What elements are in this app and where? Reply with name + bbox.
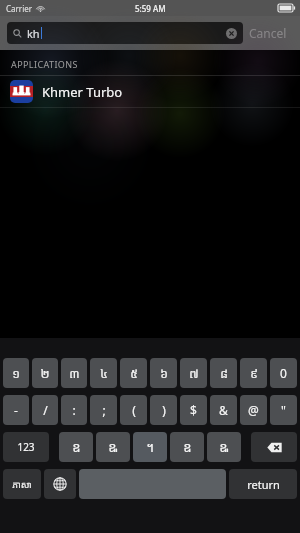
button[interactable]: Cancel	[243, 22, 293, 44]
button[interactable]: ៣	[61, 358, 87, 388]
button[interactable]: /	[32, 395, 58, 425]
staticText: ឩ	[108, 438, 118, 456]
staticText: ។	[146, 438, 154, 456]
staticText: $	[190, 402, 197, 418]
staticText: -	[14, 402, 18, 418]
staticText: 5:59 AM	[135, 3, 166, 14]
staticText: return	[247, 477, 280, 492]
staticText: /	[43, 402, 48, 418]
button[interactable]: ;	[90, 395, 117, 425]
staticText: ៦	[160, 365, 168, 381]
button[interactable]: ៩	[240, 358, 267, 388]
button[interactable]: @	[240, 395, 267, 425]
button[interactable]: 0	[270, 358, 297, 388]
button[interactable]: $	[180, 395, 207, 425]
button[interactable]: ៧	[180, 358, 207, 388]
staticText: ១	[12, 365, 20, 381]
staticText: )	[162, 402, 166, 418]
staticText: ;	[102, 402, 106, 418]
button[interactable]: ៥	[120, 358, 147, 388]
button[interactable]: ៤	[90, 358, 117, 388]
button[interactable]: -	[3, 395, 29, 425]
button[interactable]: Khmer Turbo	[0, 76, 300, 107]
staticText: Khmer Turbo	[42, 83, 123, 101]
button[interactable]: ១	[3, 358, 29, 388]
staticText: ៩	[250, 365, 258, 381]
button[interactable]: ឩ	[207, 432, 241, 462]
staticText: "	[281, 402, 286, 418]
staticText: ៤	[100, 365, 108, 381]
staticText: APPLICATIONS	[11, 58, 78, 70]
staticText: Cancel	[249, 25, 287, 41]
staticText: ៣	[69, 365, 80, 381]
button[interactable]: ឩ	[96, 432, 130, 462]
button[interactable]: ២	[32, 358, 58, 388]
button[interactable]: return	[229, 469, 297, 499]
staticText: Carrier	[6, 3, 33, 14]
button[interactable]: &	[210, 395, 237, 425]
staticText: ភាសា	[12, 478, 32, 490]
button[interactable]: Space	[79, 469, 226, 499]
button[interactable]: ឧ	[59, 432, 93, 462]
staticText: ឧ	[72, 438, 81, 456]
staticText: kh	[27, 26, 40, 41]
button[interactable]: (	[120, 395, 147, 425]
staticText: ២	[40, 365, 50, 381]
staticText: ៨	[220, 365, 228, 381]
button[interactable]: :	[61, 395, 87, 425]
button[interactable]: ៨	[210, 358, 237, 388]
staticText: 123	[17, 440, 35, 454]
button[interactable]: 123	[3, 432, 49, 462]
staticText: ៥	[130, 365, 138, 381]
button[interactable]: ភាសា	[3, 469, 41, 499]
staticText: ៧	[189, 365, 199, 381]
button[interactable]: Clear text	[226, 28, 237, 39]
button[interactable]: ឧ	[170, 432, 204, 462]
staticText: &	[219, 402, 228, 418]
staticText: @	[248, 402, 259, 418]
staticText: 0	[280, 365, 287, 381]
staticText: (	[132, 402, 136, 418]
button[interactable]: "	[270, 395, 297, 425]
staticText: ឩ	[219, 438, 229, 456]
button[interactable]: Switch keyboard	[44, 469, 76, 499]
staticText: :	[72, 402, 76, 418]
button[interactable]: ។	[133, 432, 167, 462]
button[interactable]: kh	[7, 22, 243, 44]
button[interactable]: )	[150, 395, 177, 425]
staticText: ឧ	[183, 438, 192, 456]
button[interactable]: Backspace	[251, 432, 297, 462]
button[interactable]: ៦	[150, 358, 177, 388]
